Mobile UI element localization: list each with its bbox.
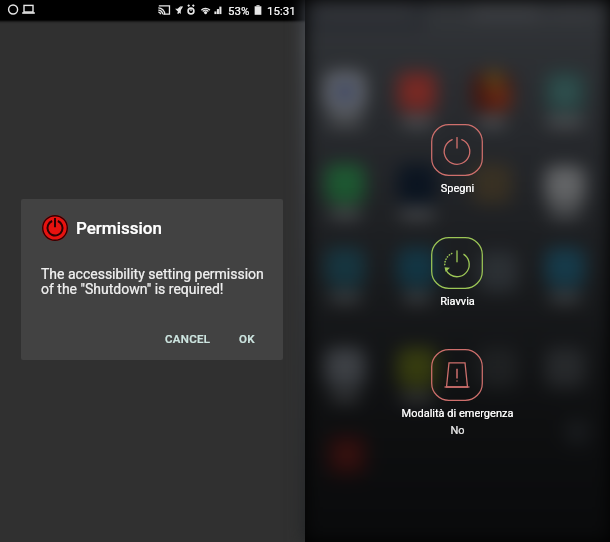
staticText: OK bbox=[239, 332, 255, 345]
staticText: Modalità di emergenza bbox=[305, 407, 610, 420]
staticText: The accessibility setting permission bbox=[41, 266, 264, 282]
staticText: No bbox=[305, 424, 610, 437]
staticText: Spegni bbox=[305, 182, 610, 195]
button[interactable]: OK bbox=[229, 324, 265, 353]
button[interactable]: CANCEL bbox=[155, 324, 221, 353]
staticText: CANCEL bbox=[165, 332, 211, 345]
staticText: 53% bbox=[228, 4, 250, 17]
button[interactable]: Restart bbox=[431, 237, 483, 312]
button[interactable]: Power off bbox=[431, 124, 483, 199]
staticText: Riavvia bbox=[305, 295, 610, 308]
staticText: of the "Shutdown" is required! bbox=[41, 281, 224, 297]
button[interactable]: Emergency mode bbox=[431, 349, 483, 440]
staticText: 15:31 bbox=[267, 4, 296, 17]
staticText: Permission bbox=[76, 218, 162, 238]
